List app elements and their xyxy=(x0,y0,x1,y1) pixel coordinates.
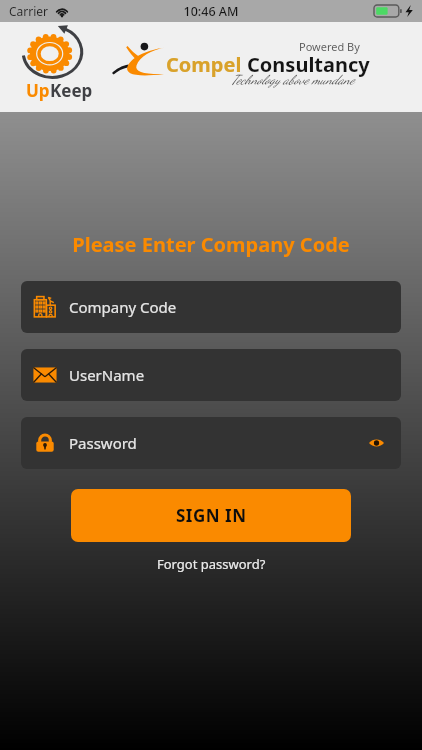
staticText: Please Enter Company Code xyxy=(0,231,422,258)
button[interactable]: Show password xyxy=(365,432,387,454)
staticText: UserName xyxy=(69,365,145,385)
staticText: SIGN IN xyxy=(176,504,247,527)
button[interactable]: UserName xyxy=(21,349,401,401)
staticText: Carrier xyxy=(9,3,49,19)
staticText: 10:46 AM xyxy=(0,3,422,20)
staticText: Powered By xyxy=(299,39,360,54)
staticText: Technology above mundane xyxy=(231,72,354,88)
staticText: Consultancy xyxy=(247,51,370,78)
button[interactable]: Forgot password? xyxy=(147,552,276,576)
button[interactable]: Password xyxy=(21,417,401,469)
staticText: Keep xyxy=(50,79,93,102)
staticText: Company Code xyxy=(69,297,177,317)
staticText: Password xyxy=(69,433,137,453)
staticText: Forgot password? xyxy=(157,555,266,573)
staticText: Up xyxy=(26,79,50,102)
button[interactable]: Company Code xyxy=(21,281,401,333)
button[interactable]: SIGN IN xyxy=(71,489,351,542)
staticText: Compel xyxy=(166,51,242,78)
